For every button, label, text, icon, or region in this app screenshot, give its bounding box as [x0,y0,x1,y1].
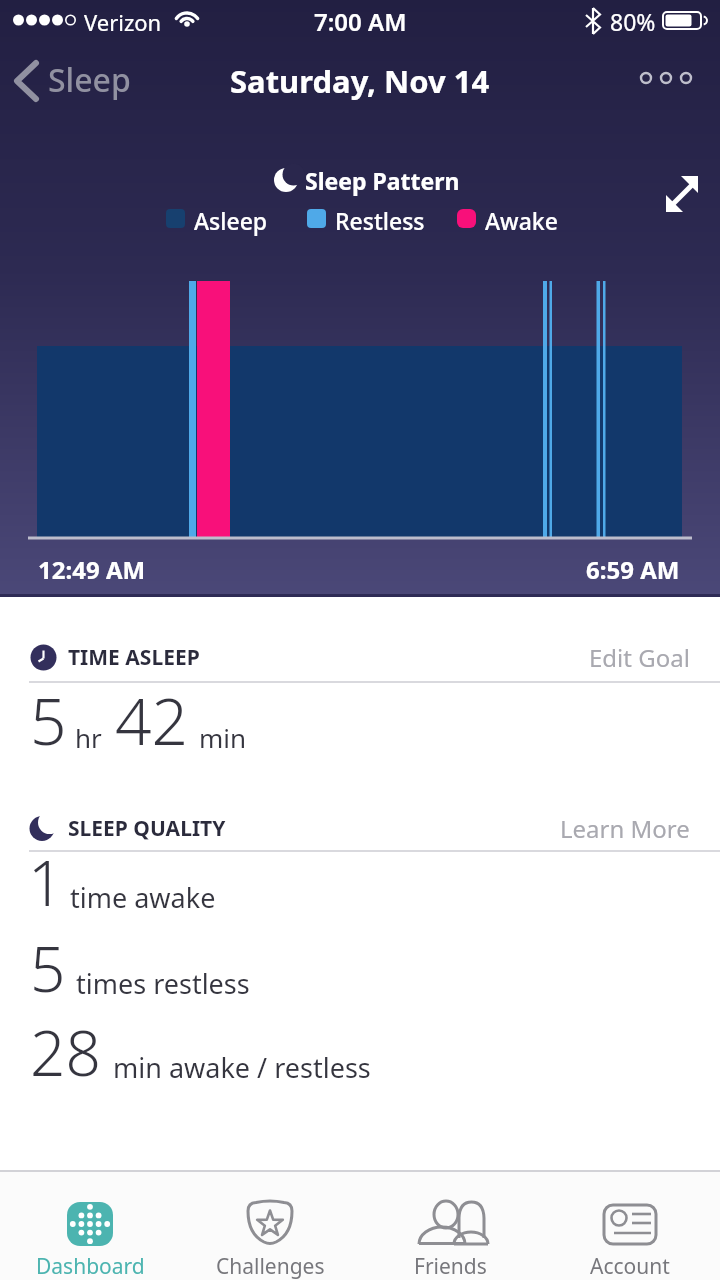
button[interactable]: Edit Goal [589,641,690,674]
button[interactable]: Friends [360,1172,540,1280]
staticText: Friends [414,1252,487,1280]
staticText: 28 [30,1010,101,1094]
staticText: 5 [30,677,67,764]
button[interactable]: Account [540,1172,720,1280]
staticText: min [199,720,247,755]
button[interactable]: Learn More [560,812,690,845]
staticText: 6:59 AM [586,553,680,586]
staticText: 1 [28,840,64,924]
button[interactable] [630,60,700,100]
staticText: 42 [115,677,189,764]
staticText: min awake / restless [113,1049,371,1086]
button[interactable]: Dashboard [0,1172,180,1280]
staticText: Verizon [84,7,162,37]
staticText: Learn More [560,812,690,845]
button[interactable]: Challenges [180,1172,360,1280]
staticText: 80% [610,6,656,37]
staticText: SLEEP QUALITY [68,814,226,843]
staticText: Edit Goal [589,641,690,674]
staticText: Awake [485,205,558,236]
staticText: 5 [30,926,66,1010]
staticText: Sleep [48,58,131,102]
staticText: Account [590,1252,670,1280]
staticText: Asleep [194,205,268,236]
staticText: Restless [335,205,425,236]
staticText: time awake [70,879,216,916]
staticText: TIME ASLEEP [68,643,200,672]
staticText: hr [75,720,102,755]
staticText: Sleep Pattern [305,165,460,196]
staticText: 7:00 AM [314,5,407,38]
button[interactable] [655,170,710,222]
staticText: 12:49 AM [38,553,146,586]
staticText: Saturday, Nov 14 [230,60,490,102]
staticText: times restless [76,965,250,1002]
button[interactable]: Sleep [8,56,148,106]
staticText: Dashboard [36,1252,145,1280]
staticText: Challenges [216,1252,325,1280]
